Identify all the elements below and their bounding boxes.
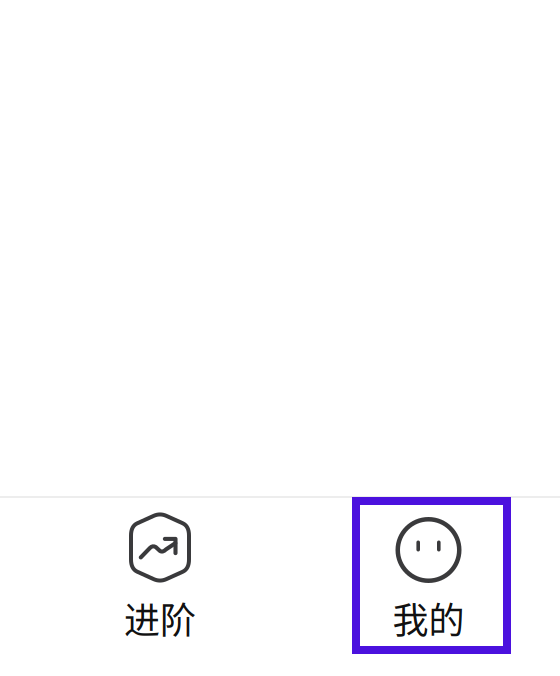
staticText: 我的 [392, 592, 464, 644]
staticText: 进阶 [124, 592, 196, 644]
button[interactable]: 进阶 [65, 497, 255, 653]
button[interactable]: 我的 [333, 497, 523, 653]
